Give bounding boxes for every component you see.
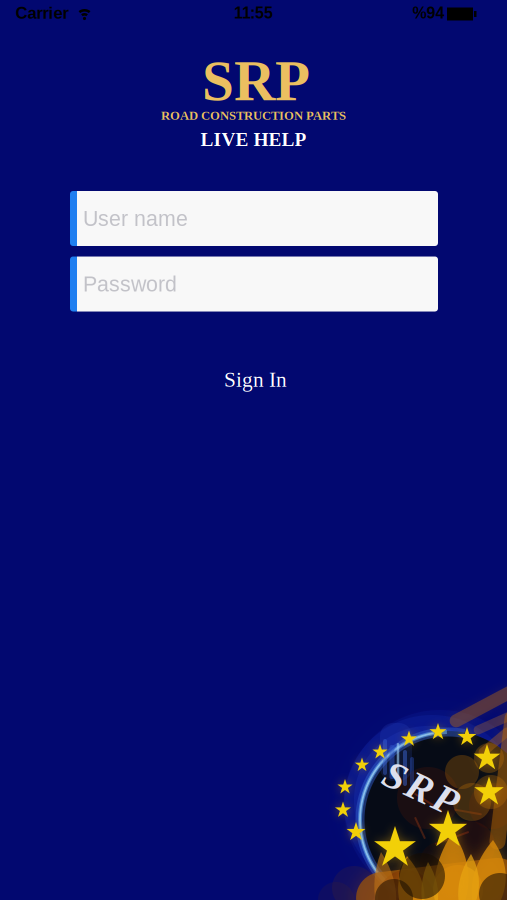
staticText: SRP bbox=[202, 49, 310, 113]
staticText: %94 bbox=[412, 4, 444, 22]
button[interactable]: Sign In bbox=[224, 368, 287, 391]
staticText: Carrier bbox=[15, 4, 68, 22]
staticText: ROAD CONSTRUCTION PARTS bbox=[161, 108, 346, 122]
staticText: User name bbox=[83, 207, 188, 230]
staticText: SRP bbox=[381, 766, 460, 810]
staticText: Password bbox=[83, 272, 177, 296]
staticText: LIVE HELP bbox=[200, 129, 306, 150]
staticText: Sign In bbox=[224, 368, 287, 391]
button[interactable]: User name bbox=[70, 191, 438, 246]
staticText: 11:55 bbox=[234, 4, 273, 22]
button[interactable]: Password bbox=[70, 256, 438, 311]
